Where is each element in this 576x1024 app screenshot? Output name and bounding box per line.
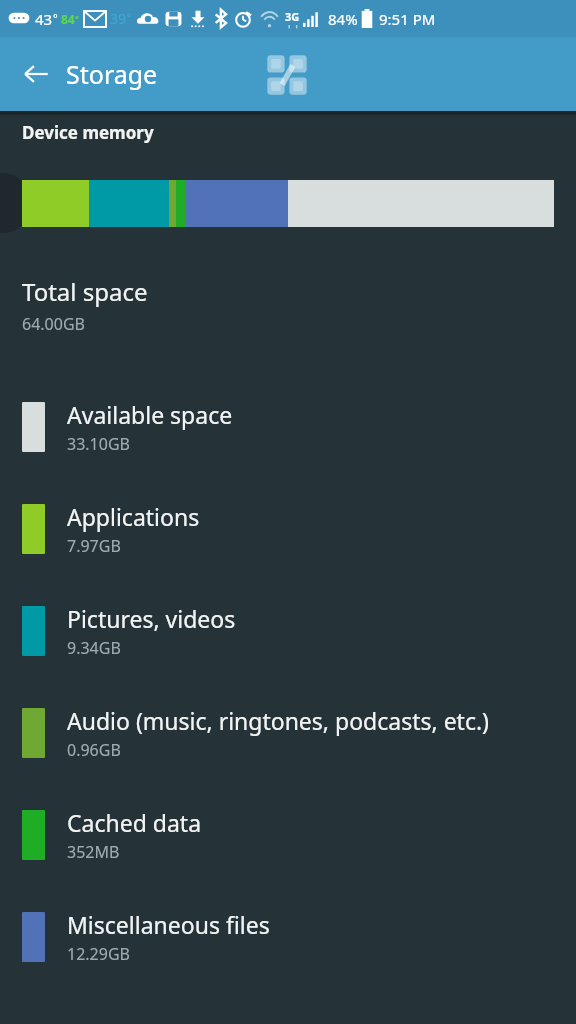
staticText: 352MB xyxy=(67,841,120,863)
staticText: Total space xyxy=(22,275,148,308)
button[interactable]: Applications xyxy=(0,478,576,580)
staticText: 7.97GB xyxy=(67,535,121,557)
staticText: Pictures, videos xyxy=(67,603,236,634)
staticText: 64.00GB xyxy=(22,313,85,335)
button[interactable]: Pictures, videos xyxy=(0,580,576,682)
button[interactable]: Available space xyxy=(0,376,576,478)
staticText: 33.10GB xyxy=(67,433,130,455)
staticText: Available space xyxy=(67,399,233,430)
staticText: Device memory xyxy=(22,121,154,144)
staticText: Audio (music, ringtones, podcasts, etc.) xyxy=(67,705,490,736)
staticText: Cached data xyxy=(67,807,202,838)
staticText: ° xyxy=(75,12,79,24)
staticText: ° xyxy=(127,10,132,24)
staticText: 84 xyxy=(61,11,75,27)
staticText: 3G xyxy=(285,9,300,24)
staticText: Applications xyxy=(67,501,200,532)
button[interactable]: Audio (music, ringtones, podcasts, etc.) xyxy=(0,682,576,784)
staticText: 39 xyxy=(110,9,127,28)
staticText: 9.34GB xyxy=(67,637,121,659)
staticText: ° xyxy=(53,10,58,25)
staticText: Storage xyxy=(66,57,158,91)
staticText: Miscellaneous files xyxy=(67,909,270,940)
staticText: 84% xyxy=(328,9,358,29)
staticText: 9:51 PM xyxy=(379,9,436,29)
button[interactable]: Cached data xyxy=(0,784,576,886)
staticText: 0.96GB xyxy=(67,739,121,761)
button[interactable]: Miscellaneous files xyxy=(0,886,576,988)
button[interactable]: Back xyxy=(8,46,64,102)
staticText: 43 xyxy=(35,9,53,29)
staticText: 12.29GB xyxy=(67,943,130,965)
button[interactable]: Screen mirroring xyxy=(262,50,312,100)
